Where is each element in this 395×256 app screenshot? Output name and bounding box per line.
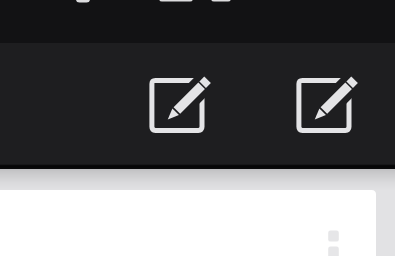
button[interactable]: More options bbox=[318, 222, 349, 256]
button[interactable]: Compose bbox=[138, 62, 224, 148]
button[interactable]: Edit bbox=[285, 62, 371, 148]
